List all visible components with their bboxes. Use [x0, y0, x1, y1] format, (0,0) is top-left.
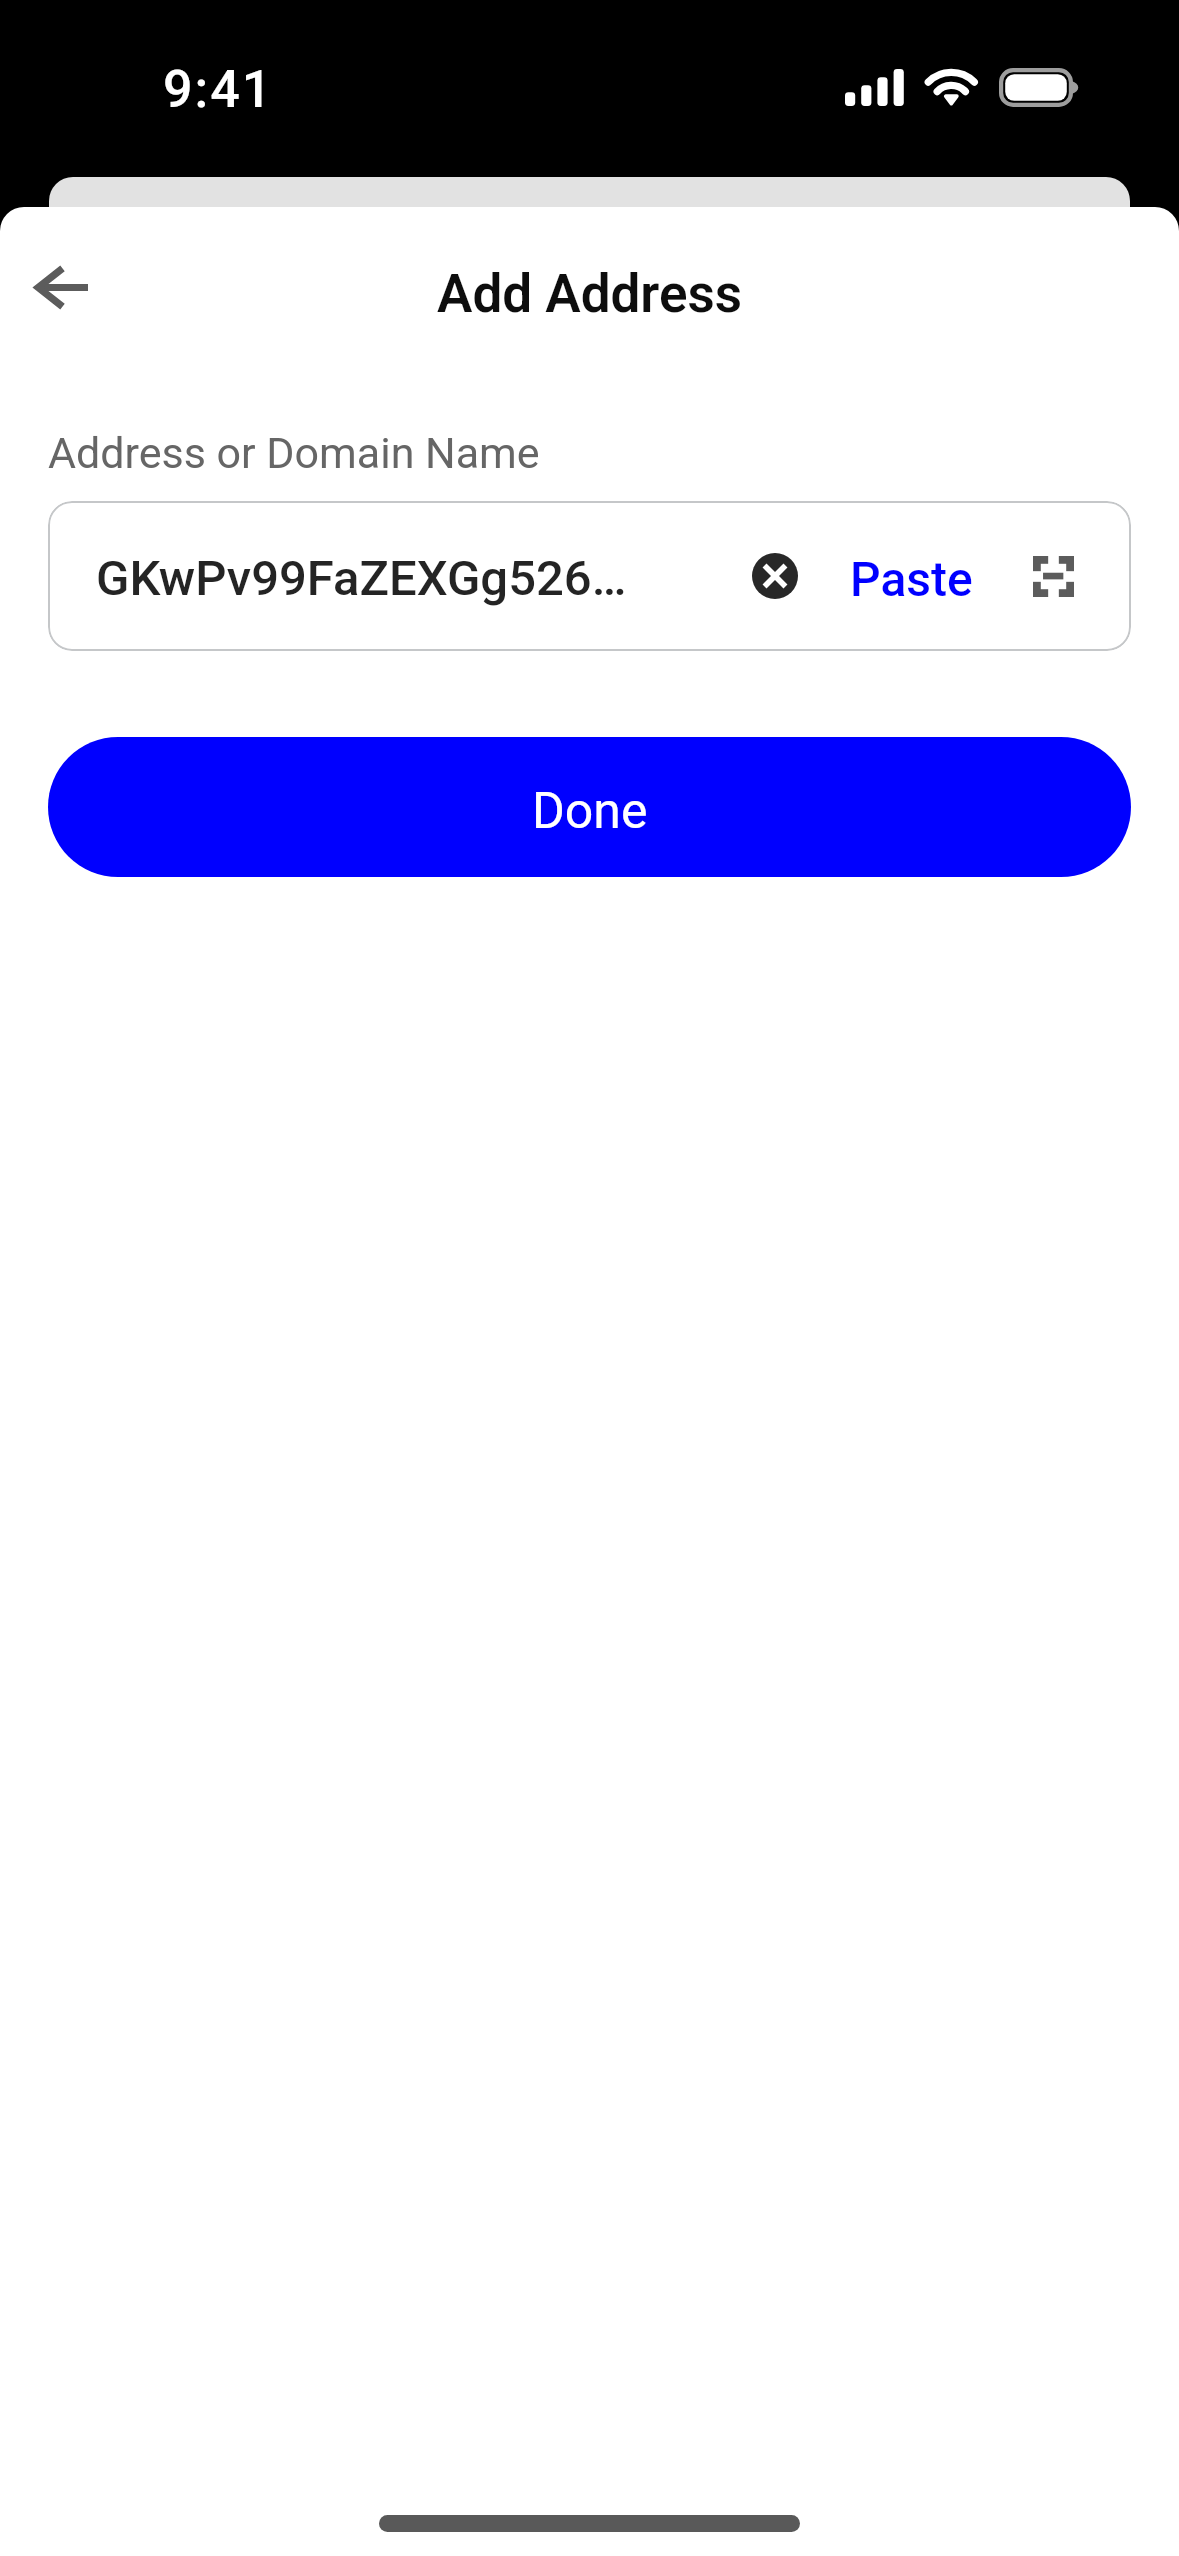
staticText: GKwPv99FaZEXGg526… [96, 550, 627, 607]
button[interactable]: Back [17, 243, 105, 331]
staticText: Paste [850, 551, 973, 607]
button[interactable]: Paste [850, 501, 973, 651]
button[interactable]: Scan QR code [1023, 546, 1083, 606]
button[interactable]: Clear text [741, 542, 809, 610]
staticText: Done [532, 782, 648, 841]
button[interactable]: Done [48, 737, 1131, 877]
staticText: Add Address [0, 263, 1179, 325]
staticText: Address or Domain Name [48, 428, 540, 478]
button[interactable]: GKwPv99FaZEXGg526… [48, 501, 1131, 651]
staticText: 9:41 [163, 59, 274, 120]
